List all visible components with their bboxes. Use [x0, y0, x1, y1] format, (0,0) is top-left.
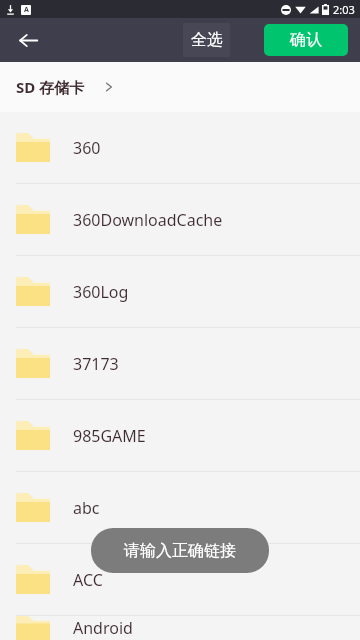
staticText: 全选	[191, 30, 223, 50]
staticText: Android	[73, 617, 133, 639]
staticText: SD 存储卡	[16, 77, 85, 97]
staticText: A	[24, 5, 29, 15]
button[interactable]: SD 存储卡	[0, 62, 360, 112]
staticText: 360DownloadCache	[73, 209, 223, 231]
staticText: 360	[73, 137, 101, 159]
button[interactable]: ACC	[0, 544, 360, 616]
staticText: 2:03	[333, 2, 355, 17]
staticText: 360Log	[73, 281, 129, 303]
button[interactable]: Back	[8, 20, 48, 60]
staticText: ACC	[73, 569, 103, 591]
button[interactable]: 360Log	[0, 256, 360, 328]
staticText: 985GAME	[73, 425, 146, 447]
staticText: 请输入正确链接	[124, 541, 236, 561]
staticText: 37173	[73, 353, 119, 375]
button[interactable]: 确认	[264, 24, 348, 56]
staticText: abc	[73, 497, 100, 519]
staticText: 确认	[290, 30, 322, 50]
button[interactable]: 37173	[0, 328, 360, 400]
button[interactable]: 985GAME	[0, 400, 360, 472]
button[interactable]: Android	[0, 616, 360, 640]
button[interactable]: abc	[0, 472, 360, 544]
button[interactable]: 360	[0, 112, 360, 184]
button[interactable]: 360DownloadCache	[0, 184, 360, 256]
button[interactable]: 全选	[183, 23, 230, 57]
